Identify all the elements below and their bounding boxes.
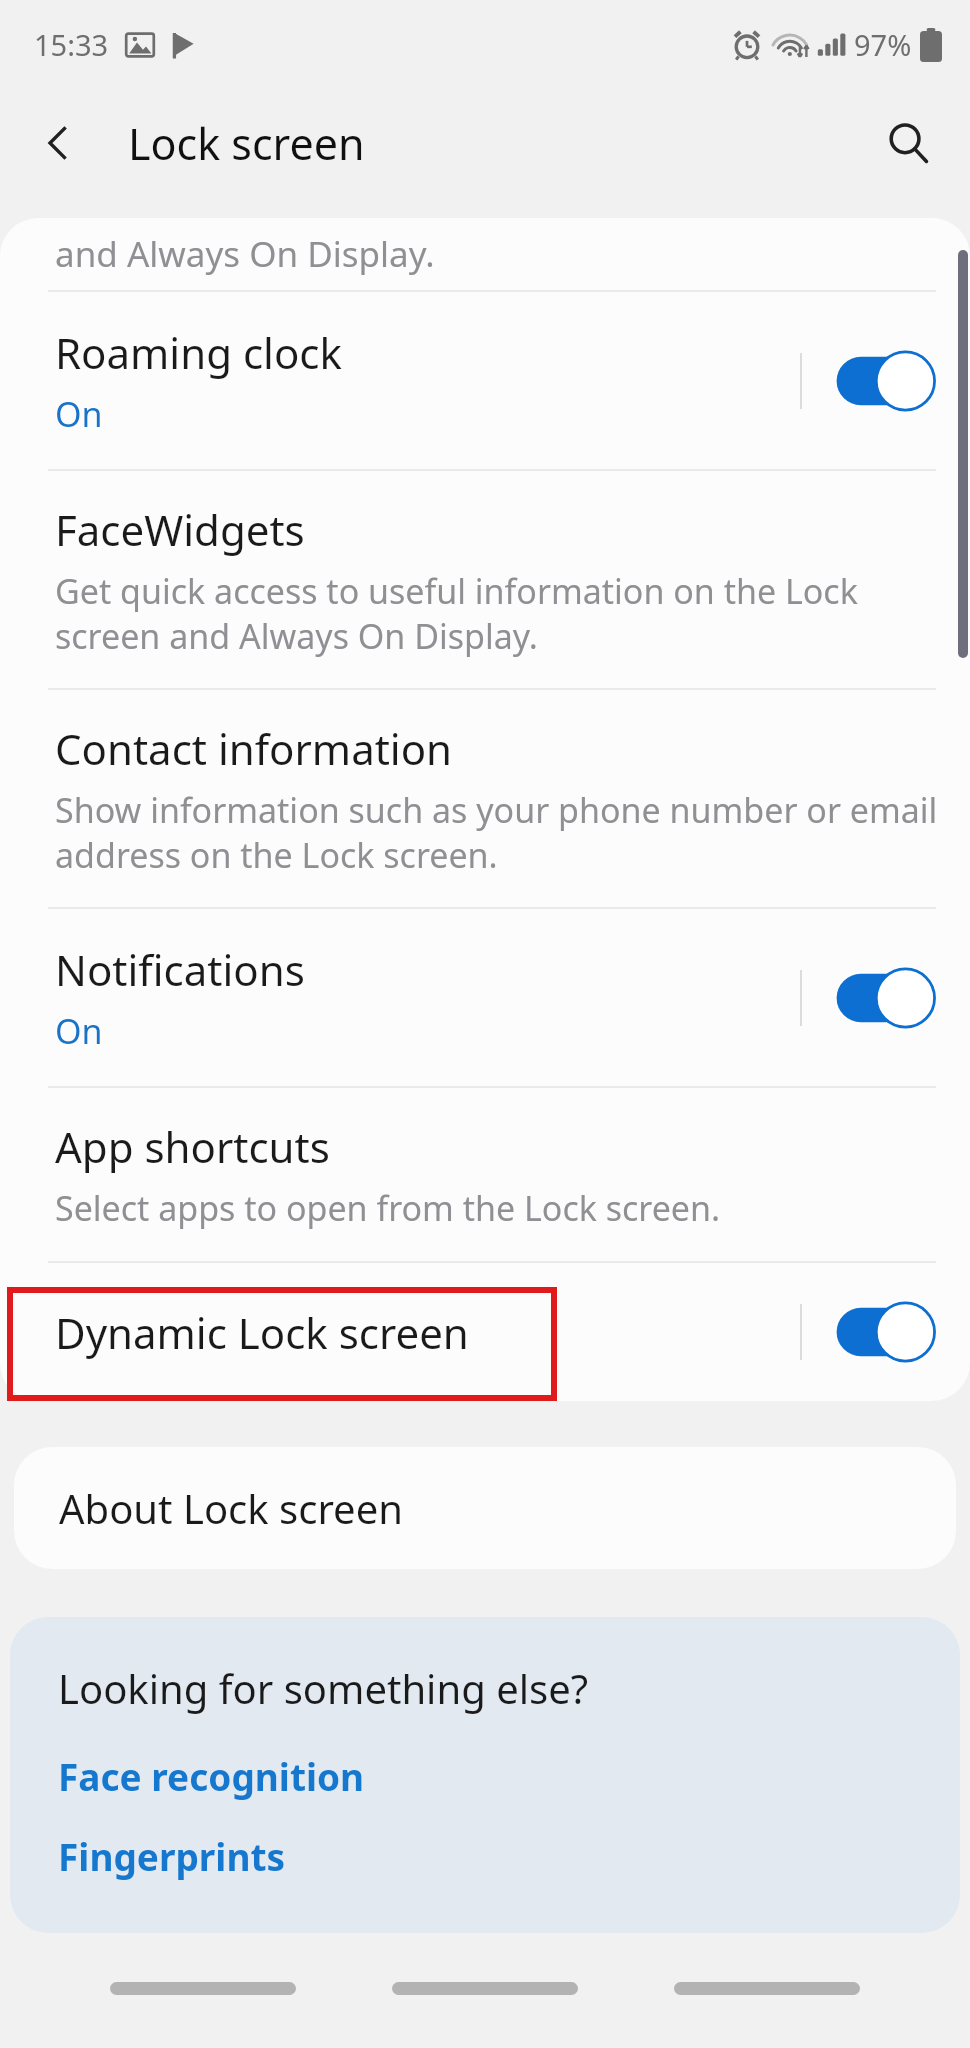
button[interactable]: Back bbox=[26, 111, 90, 175]
staticText: Lock screen bbox=[128, 114, 365, 173]
staticText: 15:33 bbox=[34, 25, 109, 64]
staticText: Looking for something else? bbox=[58, 1661, 589, 1715]
staticText: Contact information bbox=[55, 720, 453, 777]
staticText: Dynamic Lock screen bbox=[55, 1304, 469, 1361]
button[interactable]: Dynamic Lock screen bbox=[0, 1263, 970, 1401]
button[interactable]: Notifications toggle bbox=[830, 967, 940, 1029]
staticText: Roaming clock bbox=[55, 324, 342, 381]
button[interactable]: FaceWidgets bbox=[0, 471, 970, 688]
staticText: Notifications bbox=[55, 941, 305, 998]
staticText: Get quick access to useful information o… bbox=[55, 568, 858, 658]
staticText: Face recognition bbox=[58, 1751, 365, 1801]
button[interactable]: Navigation bbox=[392, 1982, 578, 1995]
button[interactable]: Roaming clock toggle bbox=[830, 350, 940, 412]
button[interactable]: Fingerprints bbox=[58, 1831, 286, 1881]
button[interactable]: About Lock screen bbox=[14, 1447, 956, 1569]
button[interactable]: Roaming clock bbox=[0, 292, 970, 469]
button[interactable]: App shortcuts bbox=[0, 1088, 970, 1261]
staticText: On bbox=[55, 391, 103, 437]
staticText: FaceWidgets bbox=[55, 501, 305, 558]
staticText: and Always On Display. bbox=[55, 230, 435, 278]
button[interactable]: Navigation bbox=[674, 1982, 860, 1995]
staticText: Select apps to open from the Lock screen… bbox=[55, 1185, 721, 1231]
button[interactable]: Contact information bbox=[0, 690, 970, 907]
staticText: 97% bbox=[854, 25, 912, 64]
button[interactable]: Search bbox=[872, 107, 944, 179]
staticText: Show information such as your phone numb… bbox=[55, 787, 938, 877]
button[interactable]: Navigation bbox=[110, 1982, 296, 1995]
staticText: Fingerprints bbox=[58, 1831, 286, 1881]
staticText: App shortcuts bbox=[55, 1118, 330, 1175]
button[interactable]: Notifications bbox=[0, 909, 970, 1086]
button[interactable]: Dynamic Lock screen toggle bbox=[830, 1301, 940, 1363]
staticText: About Lock screen bbox=[59, 1481, 403, 1535]
staticText: On bbox=[55, 1008, 103, 1054]
button[interactable]: Face recognition bbox=[58, 1751, 365, 1801]
